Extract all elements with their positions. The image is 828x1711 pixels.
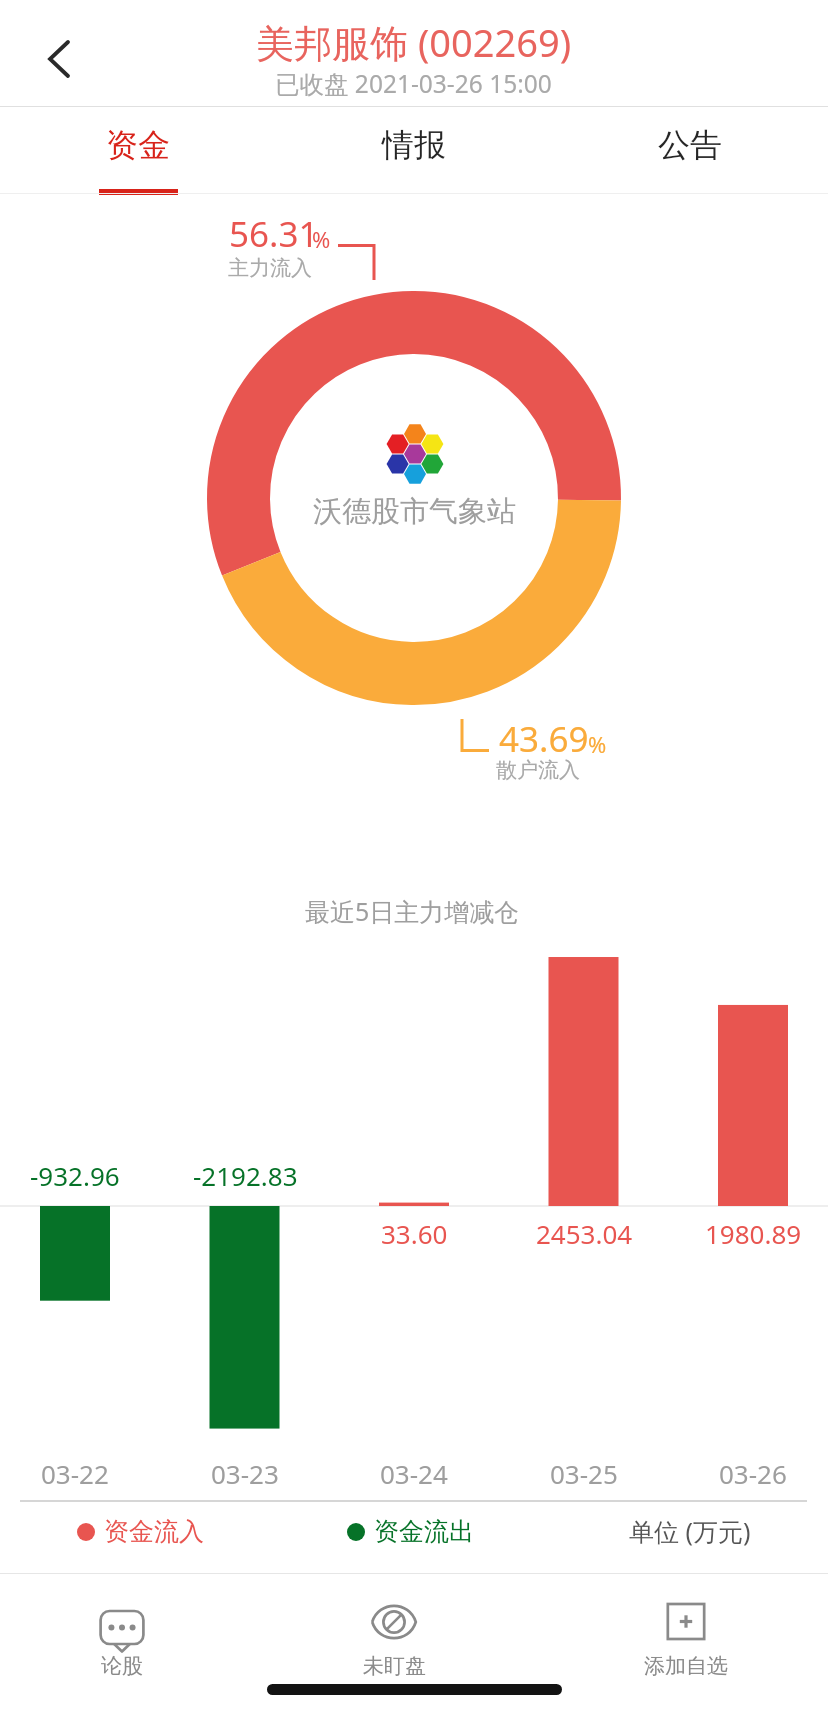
staticText: 公告 [658,125,722,165]
staticText: 1980.89 [705,1216,802,1251]
staticText: 03-22 [41,1456,109,1491]
staticText: -2192.83 [193,1158,298,1193]
staticText: 最近5日主力增减仓 [305,894,520,928]
staticText: 资金流入 [104,1516,204,1547]
staticText: 33.60 [381,1216,448,1251]
button[interactable]: Back [20,20,98,98]
staticText: -932.96 [30,1158,120,1193]
button[interactable]: 未盯盘 [314,1574,474,1692]
staticText: 资金 [106,125,170,165]
staticText: % [588,729,607,759]
staticText: 已收盘 2021-03-26 15:00 [275,67,552,100]
staticText: 散户流入 [496,757,580,783]
staticText: 论股 [101,1653,143,1679]
staticText: 未盯盘 [363,1653,426,1679]
button[interactable]: 公告 [552,107,828,194]
button[interactable]: 资金 [0,107,276,194]
staticText: 情报 [382,125,446,165]
button[interactable]: 情报 [276,107,552,194]
button[interactable]: 添加自选 [606,1574,766,1692]
staticText: % [312,224,331,254]
staticText: 2453.04 [536,1216,633,1251]
staticText: 03-23 [211,1456,279,1491]
staticText: 43.69 [499,715,589,763]
staticText: 美邦服饰 (002269) [256,16,572,68]
button[interactable]: 论股 [42,1574,202,1692]
staticText: 资金流出 [374,1516,474,1547]
staticText: 主力流入 [228,255,312,281]
staticText: 03-24 [380,1456,448,1491]
staticText: 03-25 [550,1456,618,1491]
staticText: 添加自选 [644,1653,728,1679]
staticText: 03-26 [719,1456,787,1491]
staticText: 56.31 [229,210,319,258]
staticText: 沃德股市气象站 [313,493,516,530]
staticText: 单位 (万元) [629,1514,751,1548]
